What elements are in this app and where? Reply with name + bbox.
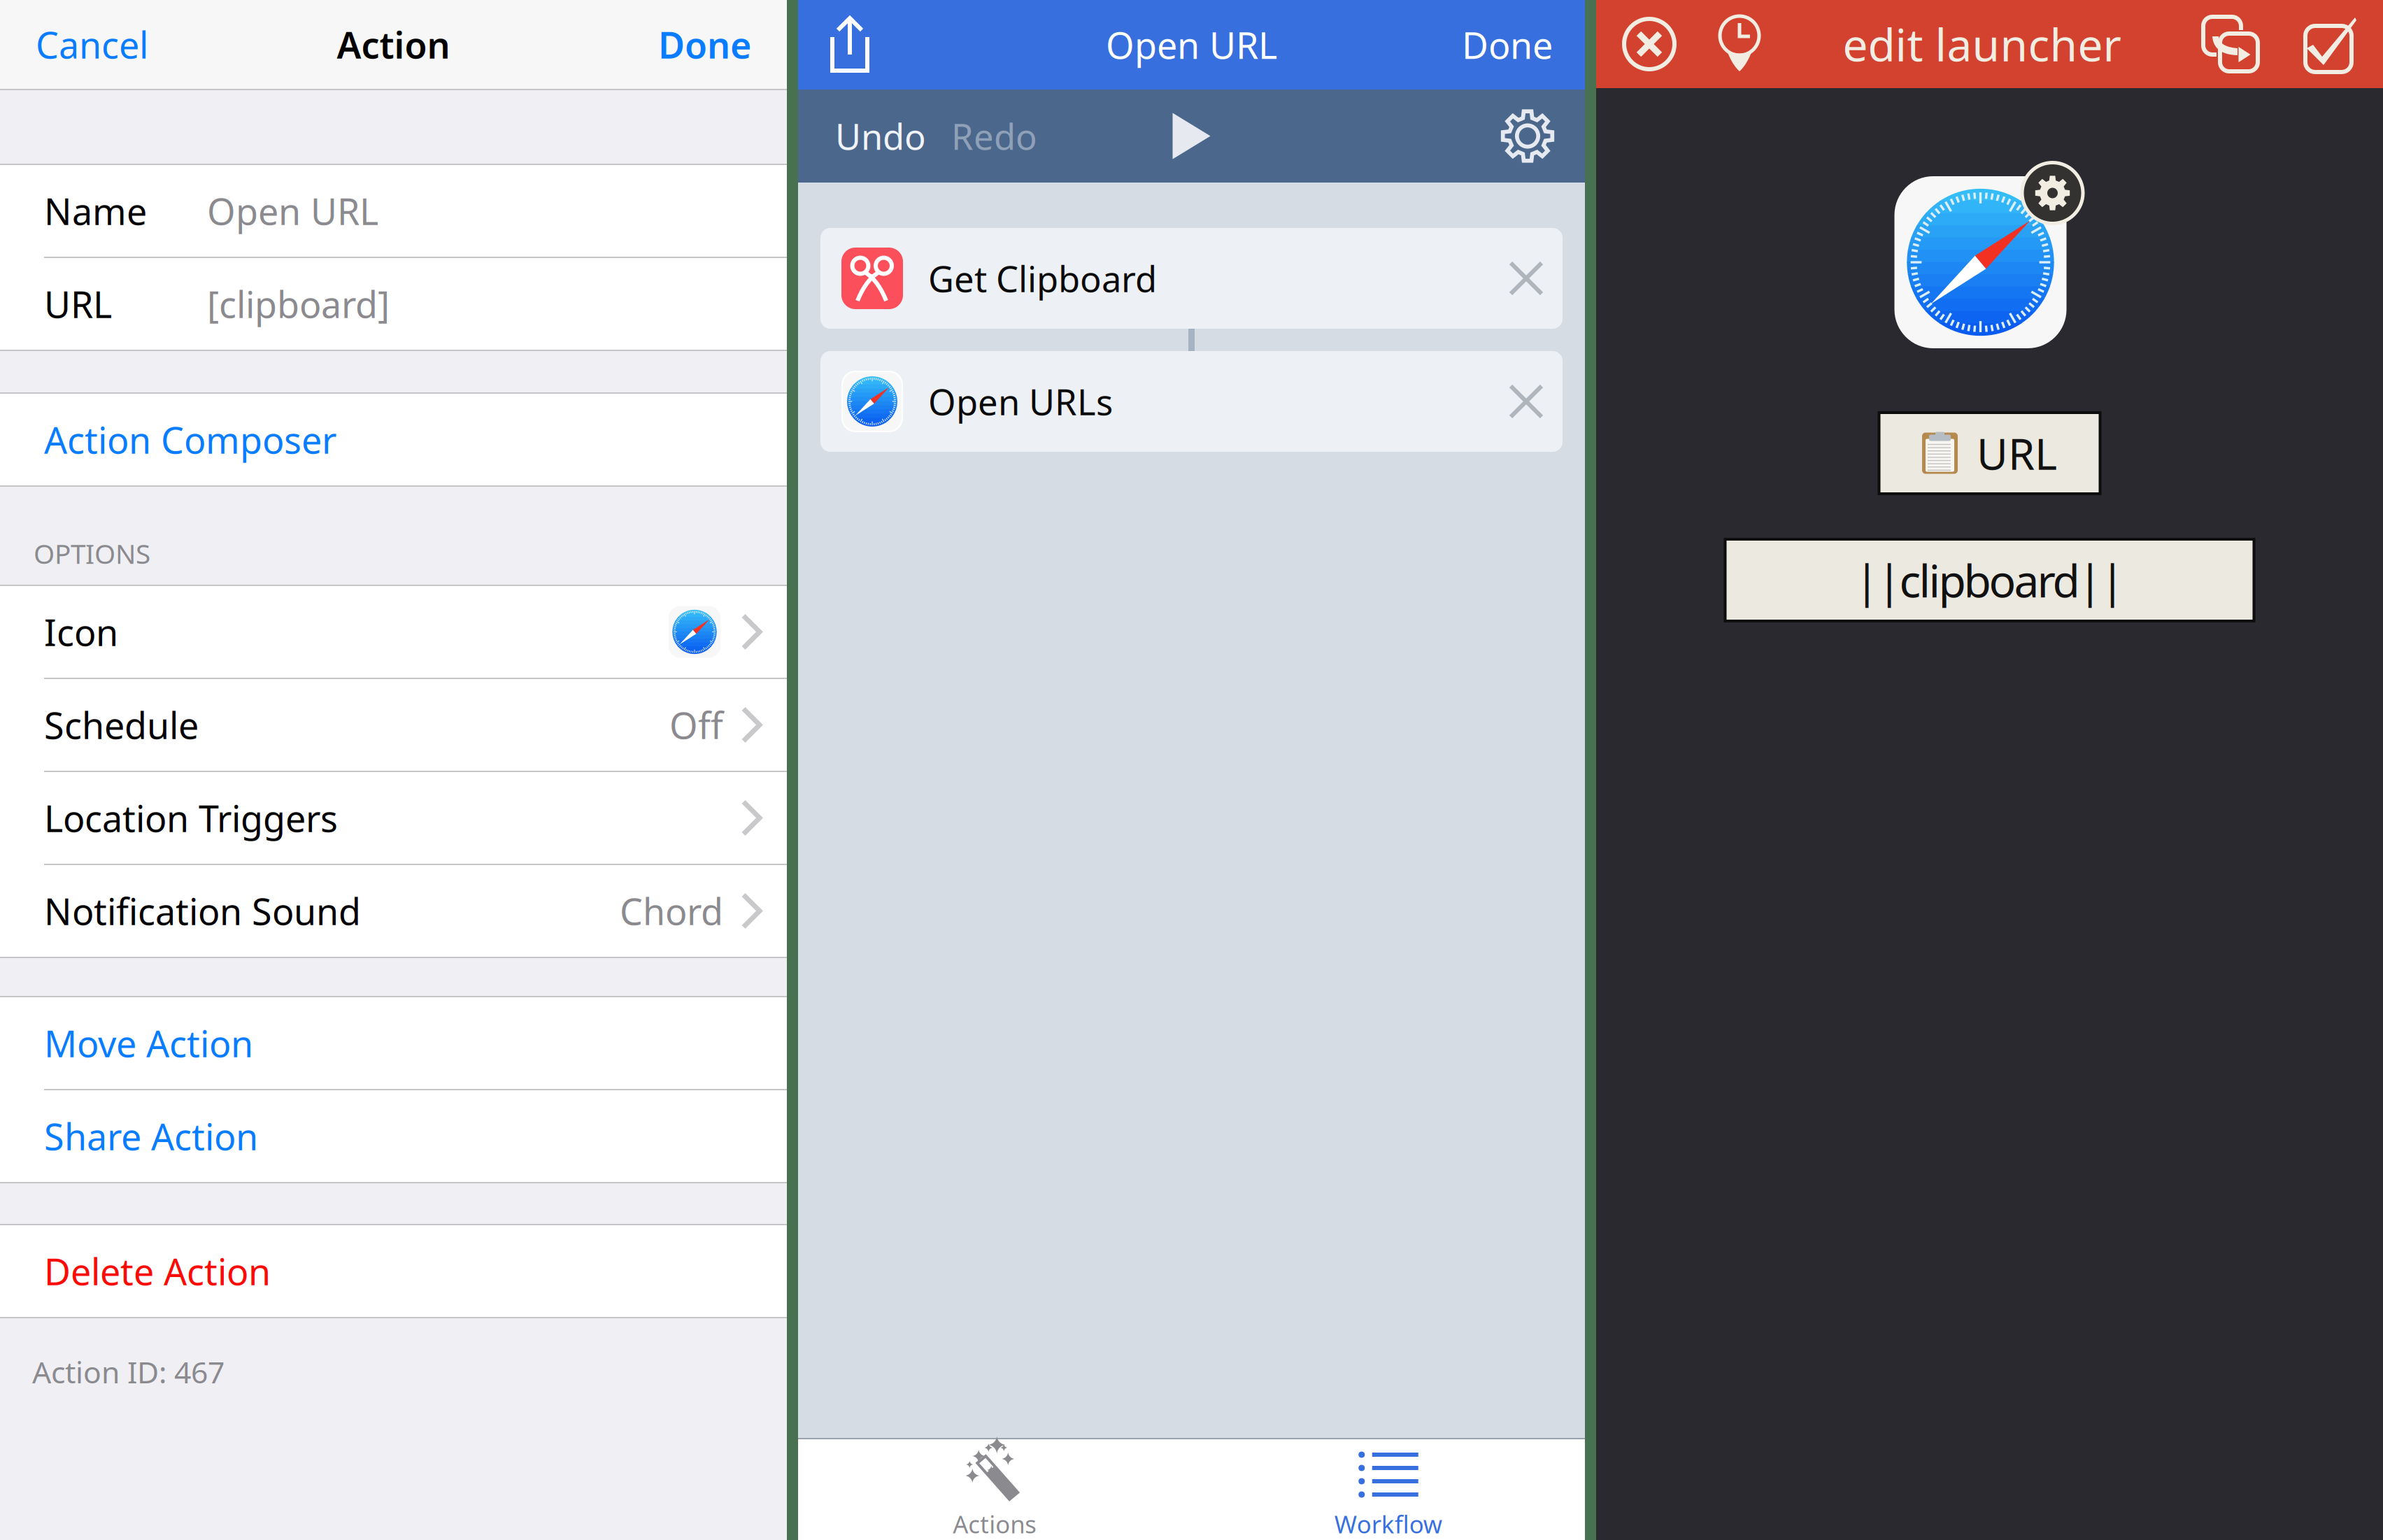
button[interactable]: Save bbox=[2279, 0, 2383, 88]
staticText: Chord bbox=[620, 887, 723, 935]
staticText: Done bbox=[1462, 21, 1553, 69]
staticText: URL bbox=[44, 280, 112, 328]
button[interactable]: Name bbox=[0, 165, 787, 257]
staticText: [clipboard] bbox=[207, 280, 390, 328]
staticText: Open URL bbox=[1106, 21, 1277, 69]
button[interactable]: Get Clipboard bbox=[820, 228, 1563, 329]
button[interactable]: Schedule bbox=[0, 679, 787, 771]
button[interactable]: ||clipboard|| bbox=[1725, 539, 2254, 621]
staticText: Notification Sound bbox=[44, 887, 361, 935]
staticText: Open URL bbox=[207, 187, 378, 235]
button[interactable]: Workflow bbox=[1191, 1439, 1585, 1540]
staticText: Cancel bbox=[36, 20, 148, 69]
button[interactable]: Undo bbox=[798, 90, 939, 183]
staticText: Redo bbox=[951, 113, 1037, 160]
staticText: Delete Action bbox=[44, 1247, 271, 1295]
staticText: Move Action bbox=[44, 1019, 253, 1067]
staticText: ||clipboard|| bbox=[1855, 550, 2125, 610]
button[interactable]: Close bbox=[1596, 0, 1697, 88]
staticText: Icon bbox=[44, 608, 118, 656]
button[interactable]: Share Action bbox=[0, 1090, 787, 1182]
staticText: Off bbox=[669, 701, 723, 749]
button[interactable]: Delete Action bbox=[0, 1225, 787, 1317]
staticText: Location Triggers bbox=[44, 794, 338, 842]
staticText: Workflow bbox=[1334, 1508, 1442, 1540]
button[interactable]: Schedule bbox=[1697, 0, 1782, 88]
button[interactable]: Done bbox=[1430, 0, 1585, 90]
button[interactable]: Actions bbox=[798, 1439, 1191, 1540]
staticText: Undo bbox=[835, 113, 926, 160]
button[interactable]: Done bbox=[623, 0, 787, 89]
button[interactable]: Change icon bbox=[1894, 161, 2085, 348]
staticText: Actions bbox=[953, 1508, 1037, 1540]
staticText: OPTIONS bbox=[34, 536, 150, 571]
button[interactable]: Cancel bbox=[0, 0, 184, 89]
staticText: Action Composer bbox=[44, 415, 336, 464]
staticText: Schedule bbox=[44, 701, 199, 749]
staticText: Name bbox=[44, 187, 147, 235]
button[interactable]: Icon bbox=[0, 586, 787, 678]
staticText: URL bbox=[1977, 425, 2057, 482]
button[interactable]: Run workflow bbox=[1143, 90, 1240, 183]
button[interactable]: Action Composer bbox=[0, 394, 787, 485]
button[interactable]: Duplicate bbox=[2182, 0, 2279, 88]
staticText: Open URLs bbox=[928, 378, 1113, 425]
staticText: Action bbox=[337, 20, 450, 69]
button[interactable]: Move Action bbox=[0, 997, 787, 1089]
button[interactable]: Settings bbox=[1501, 90, 1585, 183]
staticText: Get Clipboard bbox=[928, 255, 1157, 302]
staticText: Share Action bbox=[44, 1112, 258, 1160]
button[interactable]: Redo bbox=[939, 90, 1050, 183]
button[interactable]: URL bbox=[1879, 413, 2100, 494]
button[interactable]: Notification Sound bbox=[0, 865, 787, 957]
staticText: edit launcher bbox=[1843, 14, 2121, 74]
button[interactable]: Share bbox=[798, 0, 891, 90]
staticText: Done bbox=[658, 20, 751, 69]
staticText: Action ID: 467 bbox=[32, 1352, 225, 1392]
button[interactable]: Location Triggers bbox=[0, 772, 787, 864]
button[interactable]: URL bbox=[0, 258, 787, 350]
button[interactable]: Open URLs bbox=[820, 351, 1563, 452]
